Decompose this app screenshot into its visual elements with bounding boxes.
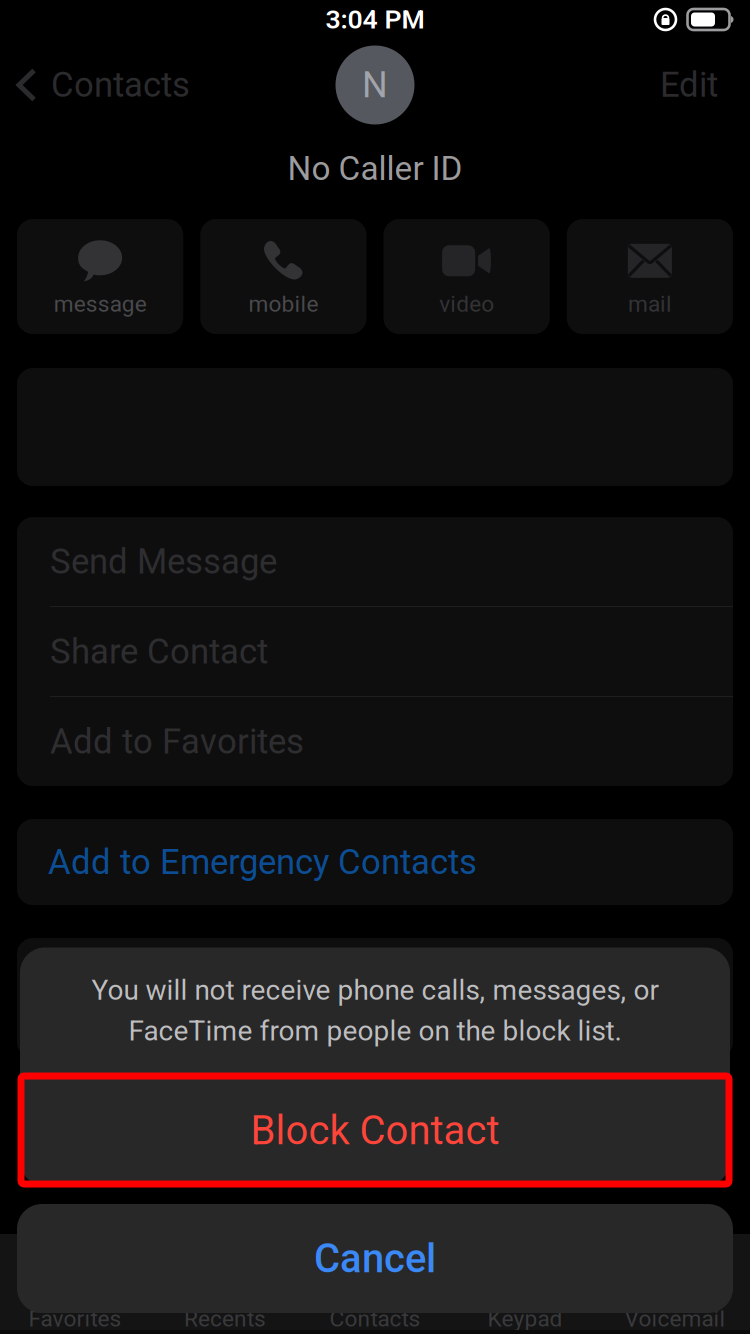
- button[interactable]: Block Contact: [20, 1075, 730, 1186]
- staticText: No Caller ID: [287, 149, 462, 188]
- staticText: Send Message: [50, 541, 277, 582]
- staticText: Keypad: [487, 1305, 562, 1332]
- staticText: Contacts: [51, 65, 190, 105]
- button[interactable]: Add to Emergency Contacts: [0, 819, 750, 905]
- staticText: Add to Favorites: [50, 721, 304, 762]
- button[interactable]: Edit: [660, 59, 750, 111]
- button[interactable]: Contacts: [0, 59, 190, 111]
- staticText: Recents: [184, 1305, 266, 1332]
- staticText: mail: [628, 291, 672, 317]
- button[interactable]: Voicemail: [600, 1234, 750, 1330]
- staticText: 3:04 PM: [325, 4, 424, 35]
- staticText: N: [362, 64, 388, 106]
- staticText: You will not receive phone calls, messag…: [91, 974, 658, 1006]
- staticText: mobile: [248, 291, 318, 317]
- staticText: Block Contact: [250, 1107, 499, 1154]
- button[interactable]: Cancel: [0, 1204, 750, 1313]
- staticText: Share Contact: [50, 631, 268, 672]
- staticText: Contacts: [329, 1305, 420, 1332]
- staticText: Favorites: [28, 1305, 121, 1332]
- staticText: video: [439, 291, 494, 317]
- button[interactable]: video: [383, 219, 550, 334]
- button[interactable]: Send Message: [17, 517, 733, 606]
- button[interactable]: Add to Favorites: [17, 697, 733, 786]
- staticText: Add to Emergency Contacts: [48, 842, 477, 882]
- button[interactable]: mobile: [200, 219, 366, 334]
- staticText: Cancel: [314, 1235, 436, 1282]
- button[interactable]: message: [17, 219, 183, 334]
- button[interactable]: Recents: [150, 1234, 300, 1330]
- button[interactable]: Keypad: [450, 1234, 600, 1330]
- staticText: Edit: [660, 65, 718, 105]
- button[interactable]: Share Contact: [17, 607, 733, 696]
- staticText: FaceTime from people on the block list.: [128, 1014, 621, 1047]
- button[interactable]: mail: [567, 219, 733, 334]
- button[interactable]: Favorites: [0, 1234, 150, 1330]
- button[interactable]: Contacts: [300, 1234, 450, 1330]
- staticText: Voicemail: [624, 1305, 725, 1332]
- staticText: message: [54, 291, 147, 317]
